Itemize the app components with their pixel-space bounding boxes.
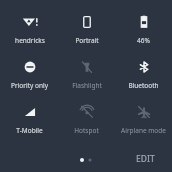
button[interactable]: Hotspot xyxy=(58,103,115,135)
staticText: Bluetooth xyxy=(128,81,159,90)
button[interactable]: Priority only xyxy=(1,58,58,90)
staticText: T-Mobile xyxy=(16,126,43,135)
button[interactable]: Airplane mode xyxy=(115,103,172,135)
staticText: hendricks xyxy=(15,36,45,45)
staticText: 46% xyxy=(137,36,150,45)
button[interactable]: Mobile network T-Mobile xyxy=(1,103,58,135)
staticText: Portrait xyxy=(75,36,99,45)
button[interactable]: Flashlight xyxy=(58,58,115,90)
button[interactable]: Battery 46 percent xyxy=(115,13,172,45)
button[interactable]: Screen rotation Portrait xyxy=(58,13,115,45)
button[interactable]: Wi-Fi hendricks xyxy=(1,13,58,45)
staticText: Priority only xyxy=(11,81,48,90)
staticText: Airplane mode xyxy=(121,126,166,135)
staticText: Flashlight xyxy=(72,81,102,90)
button[interactable]: EDIT xyxy=(133,151,158,167)
button[interactable]: Bluetooth xyxy=(115,58,172,90)
staticText: EDIT xyxy=(136,153,155,165)
staticText: Hotspot xyxy=(74,126,99,135)
